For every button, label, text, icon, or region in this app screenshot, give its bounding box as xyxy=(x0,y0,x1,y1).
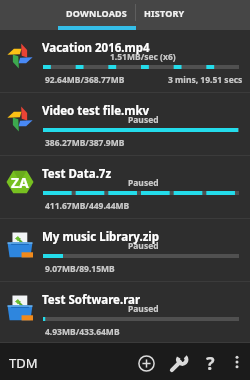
button[interactable]: DOWNLOADS xyxy=(58,0,136,30)
staticText: Test Software.rar xyxy=(42,292,141,308)
staticText: 411.67MB/449.44MB xyxy=(45,200,130,212)
button[interactable]: Settings xyxy=(164,349,192,377)
button[interactable]: Vacation 2016.mp4 xyxy=(0,30,250,93)
staticText: Paused xyxy=(128,177,159,189)
staticText: 1.51MB/sec (x6) xyxy=(110,51,176,63)
staticText: Video test file.mkv xyxy=(42,103,150,119)
staticText: 4.93MB/433.64MB xyxy=(45,326,120,338)
button[interactable]: ZA xyxy=(0,156,250,219)
button[interactable]: Add download xyxy=(132,349,160,377)
staticText: TDM xyxy=(9,354,38,372)
staticText: HISTORY xyxy=(144,7,185,19)
staticText: DOWNLOADS xyxy=(66,7,128,19)
staticText: Vacation 2016.mp4 xyxy=(42,40,150,56)
staticText: 9.07MB/89.15MB xyxy=(45,263,115,275)
button[interactable]: HISTORY xyxy=(136,0,192,30)
staticText: 3 mins, 19.51 secs xyxy=(168,74,243,86)
staticText: 92.64MB/368.77MB xyxy=(45,74,125,86)
button[interactable]: Test Software.rar xyxy=(0,282,250,343)
button[interactable]: My music Library.zip xyxy=(0,219,250,282)
staticText: Test Data.7z xyxy=(42,166,112,182)
button[interactable]: Help xyxy=(196,349,224,377)
staticText: My music Library.zip xyxy=(42,229,160,245)
staticText: Paused xyxy=(128,240,159,252)
staticText: ? xyxy=(206,351,215,376)
staticText: 386.27MB/387.9MB xyxy=(45,137,125,149)
staticText: ZA xyxy=(11,173,29,192)
button[interactable]: More options xyxy=(224,349,250,375)
staticText: Paused xyxy=(128,114,159,126)
button[interactable]: Video test file.mkv xyxy=(0,93,250,156)
staticText: Paused xyxy=(128,303,159,315)
